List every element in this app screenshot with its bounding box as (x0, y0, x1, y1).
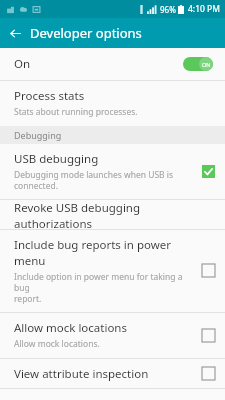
button[interactable]: View attribute inspection (0, 359, 225, 388)
staticText: Stats about running processes. (14, 106, 138, 118)
button[interactable]: Back (0, 18, 30, 48)
staticText: 96% (160, 4, 176, 15)
staticText: 4:10 PM (188, 3, 220, 15)
button[interactable]: Unchecked (202, 329, 215, 342)
button[interactable]: Unchecked (202, 264, 215, 277)
staticText: Developer options (30, 24, 142, 42)
staticText: Allow mock locations. (14, 338, 100, 350)
staticText: Process stats (14, 88, 85, 104)
button[interactable]: Unchecked (202, 367, 215, 380)
staticText: Debugging mode launches when USB is conn… (14, 169, 174, 191)
staticText: Allow mock locations (14, 320, 127, 336)
button[interactable]: Process stats (0, 81, 225, 126)
button[interactable]: Allow mock locations (0, 313, 225, 358)
staticText: Debugging (14, 129, 62, 141)
staticText: USB debugging (14, 151, 99, 167)
button[interactable]: Include bug reports in power menu (0, 230, 225, 312)
button[interactable]: On (0, 48, 225, 80)
button[interactable]: USB debugging (0, 144, 225, 199)
staticText: Include bug reports in power menu (14, 237, 196, 269)
staticText: Include option in power menu for taking … (14, 271, 196, 304)
button[interactable]: Revoke USB debugging authorizations (0, 200, 225, 229)
staticText: Revoke USB debugging authorizations (14, 200, 213, 229)
button[interactable]: Checked (202, 165, 215, 178)
staticText: ON (202, 61, 211, 68)
staticText: View attribute inspection (14, 366, 202, 382)
staticText: On (14, 56, 183, 72)
